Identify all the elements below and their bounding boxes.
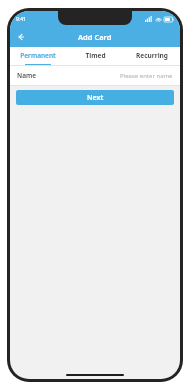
staticText: Next: [87, 93, 104, 103]
staticText: Please enter name: [120, 72, 173, 80]
staticText: 9:41: [16, 16, 26, 23]
staticText: Recurring: [136, 51, 168, 60]
button[interactable]: Recurring: [123, 47, 180, 65]
button[interactable]: Timed: [66, 47, 123, 65]
staticText: Add Card: [78, 32, 112, 42]
button[interactable]: Next: [16, 90, 174, 105]
button[interactable]: Back: [13, 29, 29, 45]
staticText: Name: [17, 71, 36, 80]
button[interactable]: Permanent: [10, 47, 66, 65]
staticText: Timed: [85, 51, 106, 60]
button[interactable]: Name: [10, 66, 180, 85]
staticText: Permanent: [20, 51, 56, 60]
